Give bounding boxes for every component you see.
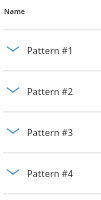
staticText: Pattern #2: [27, 85, 73, 97]
button[interactable]: Expand Pattern #4: [0, 153, 101, 193]
staticText: Pattern #4: [27, 167, 73, 179]
button[interactable]: Expand Pattern #2: [0, 71, 101, 111]
button[interactable]: Expand Pattern #1: [7, 44, 19, 56]
staticText: Pattern #3: [27, 126, 73, 138]
button[interactable]: Expand Pattern #4: [7, 167, 19, 179]
button[interactable]: Name: [0, 0, 101, 29]
button[interactable]: Expand Pattern #3: [0, 112, 101, 152]
staticText: Name: [4, 7, 25, 17]
staticText: Pattern #1: [27, 44, 73, 56]
button[interactable]: Expand Pattern #1: [0, 30, 101, 70]
button[interactable]: Expand Pattern #3: [7, 126, 19, 138]
button[interactable]: Expand Pattern #2: [7, 85, 19, 97]
